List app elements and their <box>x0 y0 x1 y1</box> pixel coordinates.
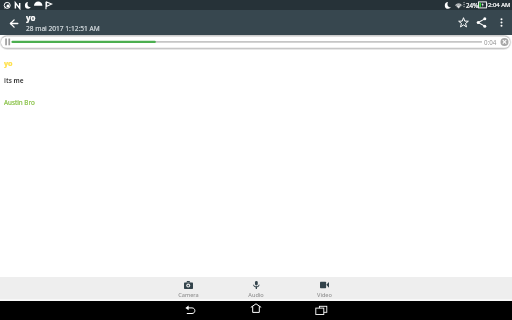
button[interactable]: Share <box>472 10 490 35</box>
button[interactable]: Camera <box>154 277 222 301</box>
staticText: 0:04 <box>484 38 497 46</box>
staticText: yo <box>26 12 36 23</box>
staticText: 24% <box>466 1 479 9</box>
button[interactable]: Audio <box>222 277 290 301</box>
staticText: yo <box>4 58 13 68</box>
staticText: Video <box>317 291 332 299</box>
button[interactable]: More options <box>490 10 512 35</box>
button[interactable]: Pause <box>2 36 13 48</box>
staticText: 28 mai 2017 1:12:51 AM <box>26 24 100 33</box>
staticText: Austin Bro <box>4 98 35 107</box>
button[interactable]: Close player <box>498 36 509 48</box>
staticText: its me <box>4 76 24 85</box>
button[interactable]: Favorite <box>454 10 472 35</box>
button[interactable]: Video <box>290 277 358 301</box>
button[interactable]: Back <box>170 301 212 320</box>
button[interactable]: Recent apps <box>300 301 342 320</box>
staticText: Camera <box>178 291 199 299</box>
button[interactable]: Navigate up <box>0 10 26 35</box>
staticText: Audio <box>248 291 264 299</box>
button[interactable]: Home <box>235 301 277 320</box>
staticText: 2:04 AM <box>488 1 511 9</box>
